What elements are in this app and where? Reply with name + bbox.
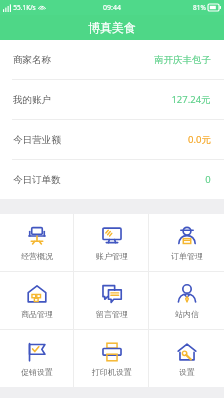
button[interactable]: 商品管理	[0, 272, 74, 329]
staticText: 商家名称	[13, 54, 51, 66]
button[interactable]: 设置	[149, 330, 224, 387]
button[interactable]: 留言管理	[74, 272, 149, 329]
staticText: 127.24元	[171, 93, 211, 106]
staticText: 留言管理	[96, 309, 128, 319]
staticText: 今日订单数	[13, 174, 61, 186]
staticText: 博真美食	[88, 20, 136, 35]
button[interactable]: 经营概况	[0, 214, 74, 271]
button[interactable]: 今日营业额	[0, 120, 224, 159]
staticText: 今日营业额	[13, 134, 61, 146]
staticText: 账户管理	[96, 251, 128, 261]
staticText: 打印机设置	[92, 367, 132, 377]
staticText: 0.0元	[188, 133, 211, 146]
staticText: 站内信	[175, 309, 199, 319]
button[interactable]: 打印机设置	[74, 330, 149, 387]
button[interactable]: 站内信	[149, 272, 224, 329]
button[interactable]: 今日订单数	[0, 160, 224, 199]
staticText: 0	[205, 173, 211, 186]
staticText: 经营概况	[21, 251, 53, 261]
staticText: 55.1K/s	[13, 3, 36, 12]
button[interactable]: 商家名称	[0, 40, 224, 79]
button[interactable]: 促销设置	[0, 330, 74, 387]
button[interactable]: 订单管理	[149, 214, 224, 271]
staticText: 订单管理	[171, 251, 203, 261]
staticText: 南开庆丰包子	[154, 54, 211, 66]
button[interactable]: 我的账户	[0, 80, 224, 119]
staticText: 设置	[179, 367, 195, 377]
staticText: 09:44	[103, 3, 121, 13]
staticText: 81%	[193, 3, 206, 12]
staticText: 商品管理	[21, 309, 53, 319]
button[interactable]: 账户管理	[74, 214, 149, 271]
staticText: 我的账户	[13, 94, 51, 106]
staticText: 促销设置	[21, 367, 53, 377]
